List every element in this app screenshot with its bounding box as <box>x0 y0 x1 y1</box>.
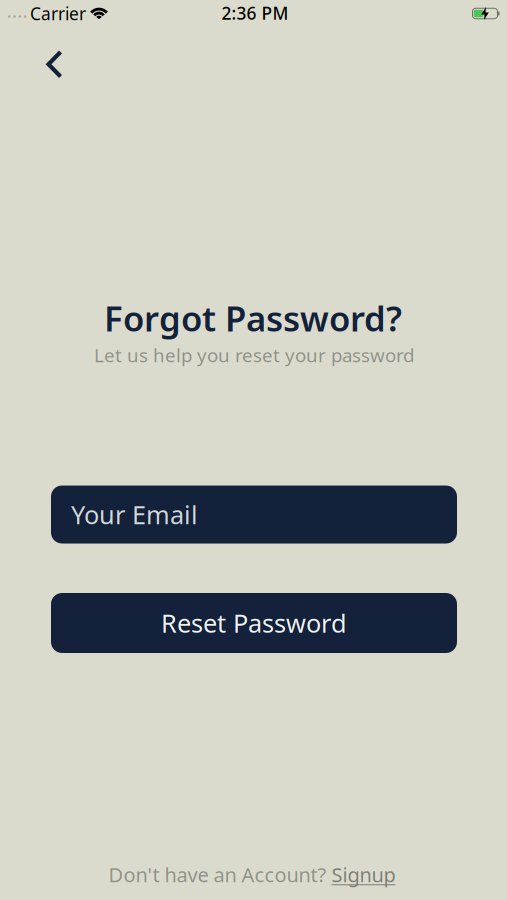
button[interactable]: Reset Password <box>51 593 457 653</box>
staticText: Your Email <box>71 498 198 531</box>
staticText: Don't have an Account? <box>108 861 326 888</box>
button[interactable]: Your Email <box>51 485 457 543</box>
button[interactable]: Back <box>0 27 80 84</box>
staticText: Forgot Password? <box>104 295 402 341</box>
staticText: Signup <box>331 861 395 888</box>
staticText: 2:36 PM <box>221 1 288 24</box>
button[interactable]: Signup <box>331 861 395 888</box>
staticText: Let us help you reset your password <box>94 343 414 367</box>
staticText: Reset Password <box>161 606 347 640</box>
staticText: Carrier <box>30 2 86 25</box>
